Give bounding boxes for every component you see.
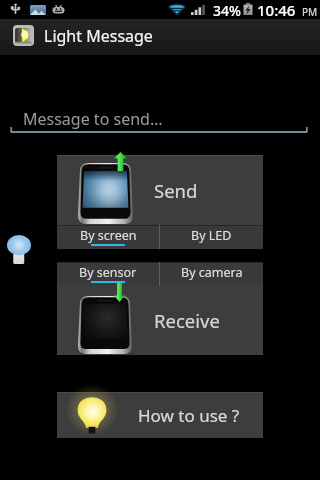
staticText: By screen (80, 227, 137, 244)
button[interactable]: By LED (160, 225, 263, 249)
button[interactable]: By sensor (57, 262, 159, 286)
staticText: By LED (191, 227, 232, 244)
button[interactable]: By screen (57, 225, 159, 249)
button[interactable]: By camera (160, 262, 263, 286)
button[interactable]: Receive (57, 286, 263, 355)
staticText: By sensor (79, 264, 137, 281)
button[interactable]: Send (57, 155, 263, 225)
staticText: By camera (181, 264, 243, 281)
staticText: Receive (154, 308, 220, 333)
staticText: 34% (213, 1, 241, 20)
staticText: 10:46 (257, 0, 296, 19)
staticText: How to use ? (138, 404, 240, 427)
staticText: Message to send… (23, 108, 163, 130)
staticText: Send (154, 178, 198, 203)
staticText: Light Message (44, 25, 153, 47)
staticText: PM (302, 5, 318, 19)
button[interactable]: App icon (13, 25, 34, 46)
button[interactable]: Message to send… (10, 108, 308, 135)
button[interactable]: How to use ? (57, 392, 263, 438)
